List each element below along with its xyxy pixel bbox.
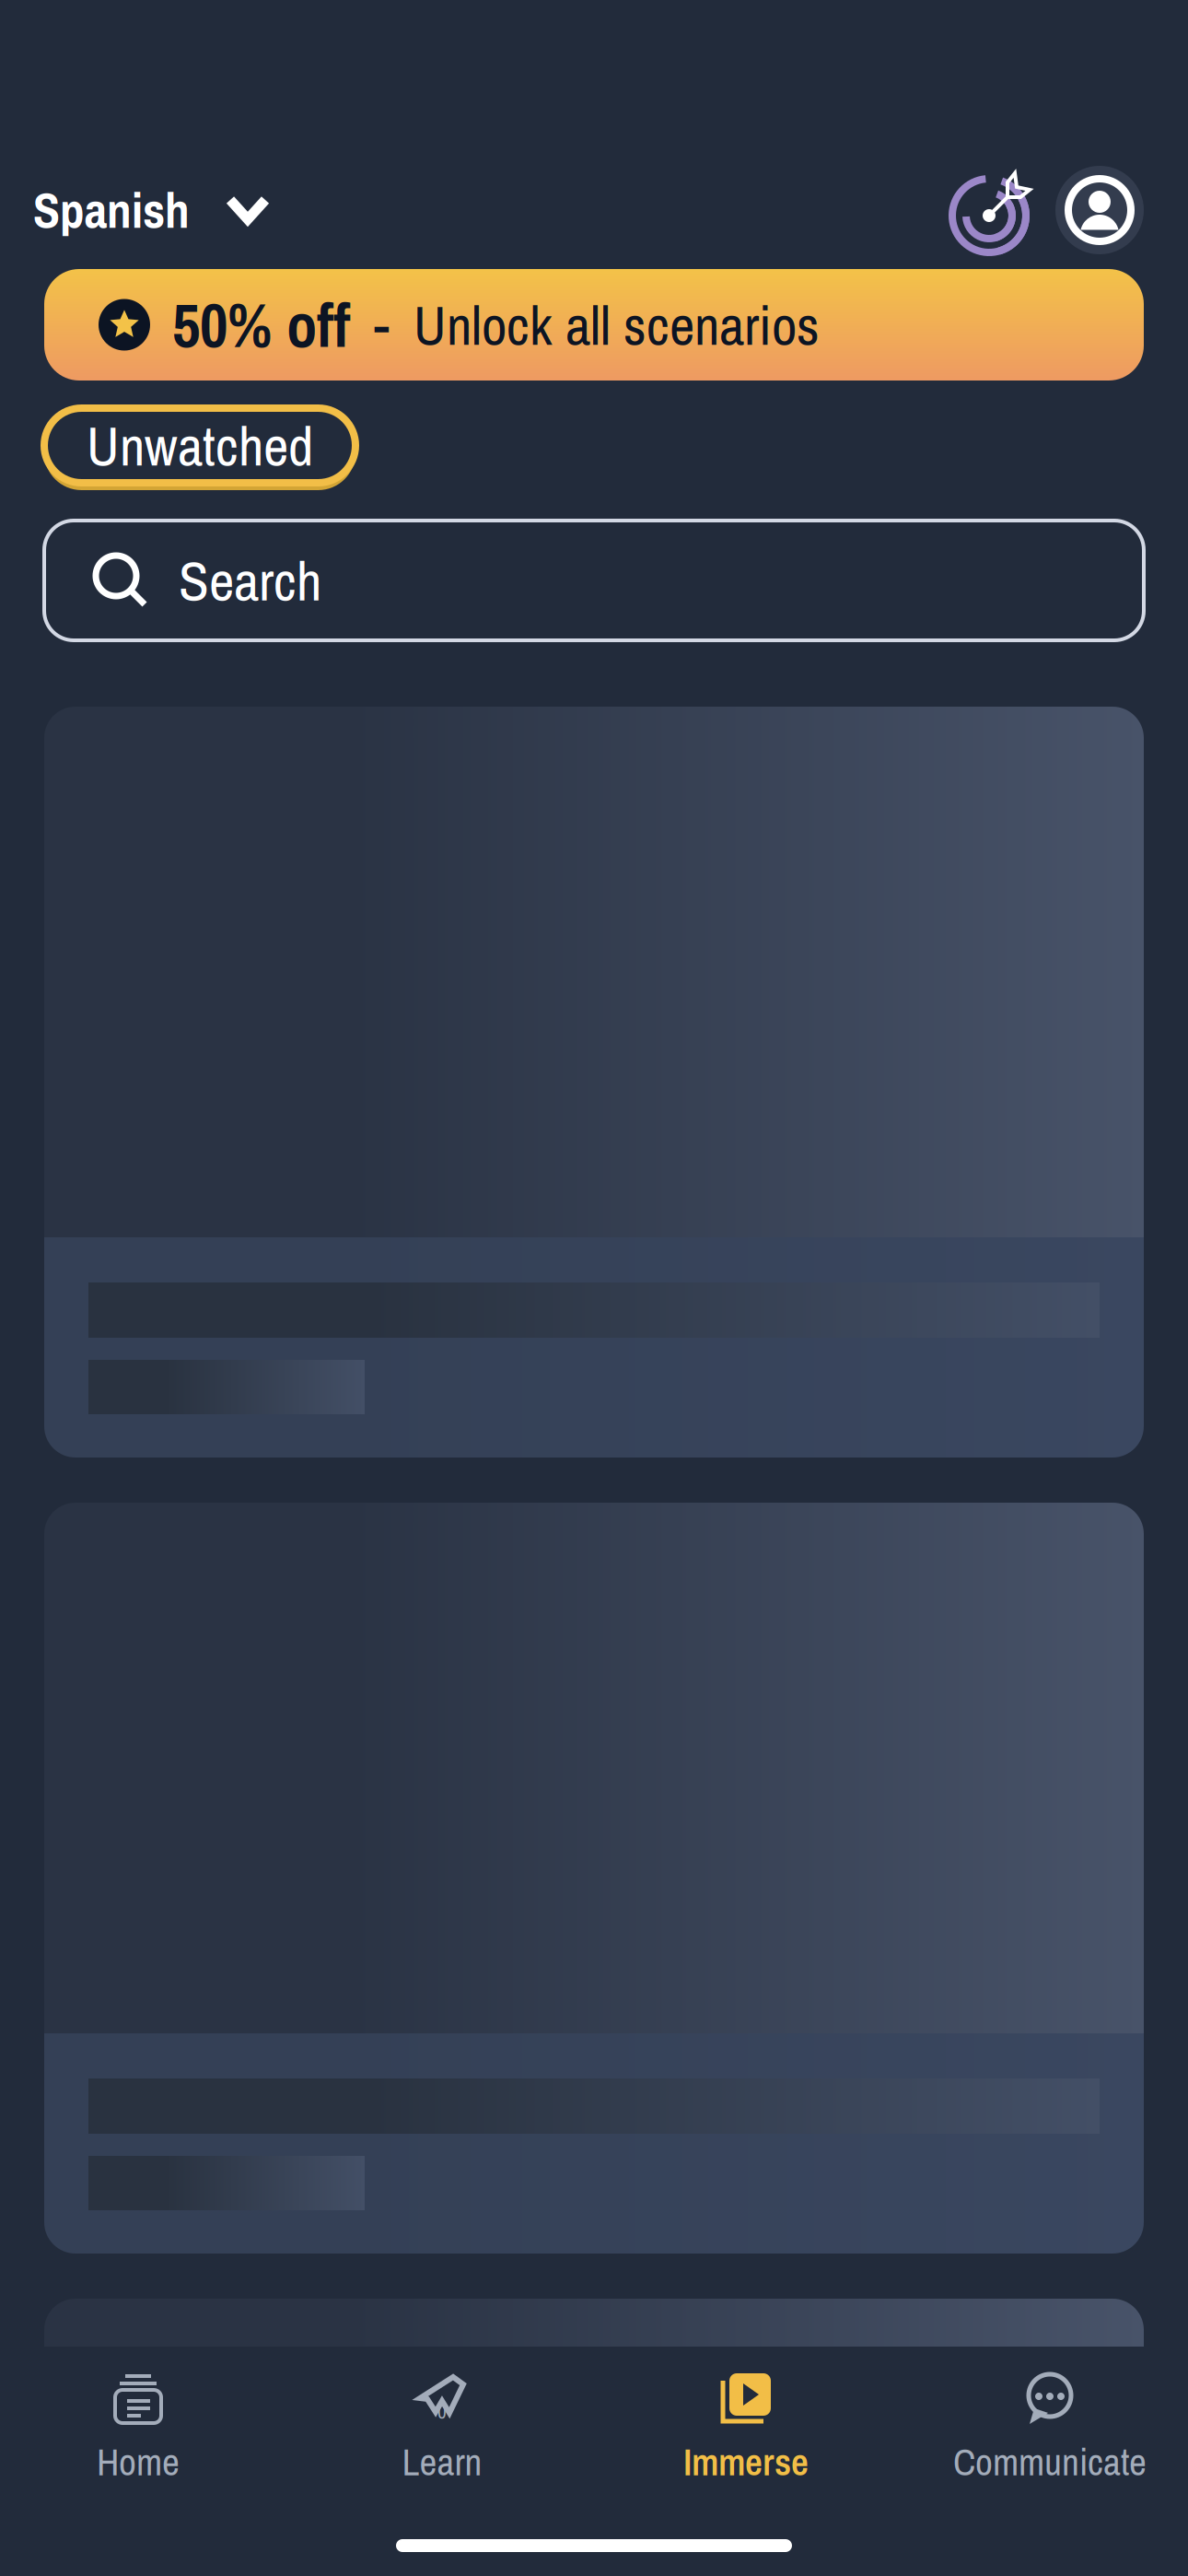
- button[interactable]: Communicate: [898, 2347, 1188, 2505]
- button[interactable]: Loading scenario: [44, 1503, 1144, 2254]
- staticText: Unlock all scenarios: [413, 288, 820, 362]
- staticText: Home: [97, 2436, 180, 2487]
- staticText: Learn: [402, 2436, 482, 2487]
- button[interactable]: Loading scenario: [44, 2299, 1144, 2576]
- button[interactable]: Search: [44, 521, 1144, 640]
- button[interactable]: 0: [290, 2347, 594, 2505]
- button[interactable]: Profile: [1055, 166, 1144, 254]
- button[interactable]: Immerse: [594, 2347, 898, 2505]
- staticText: -: [374, 287, 390, 363]
- staticText: Search: [179, 543, 321, 618]
- button[interactable]: 50% off: [44, 269, 1144, 381]
- button[interactable]: Loading scenario: [44, 707, 1144, 1458]
- staticText: 0: [437, 2398, 447, 2425]
- staticText: Immerse: [683, 2436, 809, 2487]
- staticText: Communicate: [953, 2436, 1147, 2487]
- staticText: 50% off: [172, 283, 350, 366]
- button[interactable]: Goals: [943, 164, 1035, 256]
- staticText: Spanish: [33, 177, 190, 243]
- staticText: Unwatched: [87, 408, 313, 483]
- button[interactable]: Home: [0, 2347, 290, 2505]
- button[interactable]: Spanish: [44, 164, 282, 256]
- button[interactable]: Unwatched: [44, 408, 355, 490]
